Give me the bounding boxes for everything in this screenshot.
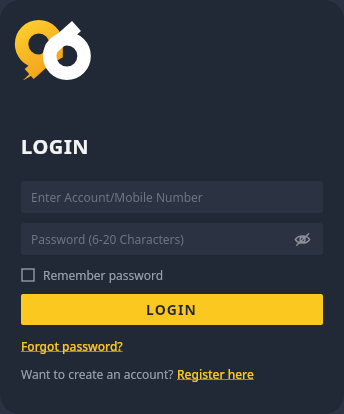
- staticText: Enter Account/Mobile Number: [31, 189, 203, 205]
- other: 96 logo: [19, 20, 91, 80]
- button[interactable]: Remember password: [21, 264, 165, 286]
- button[interactable]: Forgot password?: [21, 338, 126, 354]
- staticText: Remember password: [43, 267, 164, 283]
- staticText: Password (6-20 Characters): [31, 231, 184, 247]
- staticText: Want to create an account?: [21, 366, 177, 382]
- staticText: LOGIN: [146, 300, 198, 319]
- button[interactable]: Register here: [177, 366, 254, 382]
- staticText: LOGIN: [21, 133, 90, 160]
- staticText: Forgot password?: [21, 338, 126, 354]
- button[interactable]: Show password: [291, 228, 313, 250]
- button[interactable]: Password (6-20 Characters): [21, 223, 323, 255]
- button[interactable]: LOGIN: [21, 294, 323, 325]
- staticText: Register here: [177, 366, 254, 382]
- button[interactable]: Enter Account/Mobile Number: [21, 181, 323, 213]
